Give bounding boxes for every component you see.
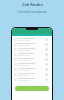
staticText: Cek Resiko [22,2,43,7]
button[interactable] [12,42,52,47]
button[interactable] [12,62,52,67]
button[interactable] [12,77,52,82]
button[interactable] [12,37,52,42]
button[interactable] [12,72,52,77]
button[interactable] [12,52,52,57]
staticText: Cek resiko keuanganmu [17,10,47,14]
button[interactable]: Lanjut [15,86,49,91]
button[interactable] [12,67,52,72]
button[interactable] [12,47,52,52]
button[interactable] [12,57,52,62]
